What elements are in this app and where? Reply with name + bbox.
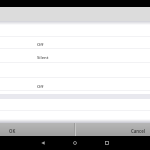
button[interactable]: OK	[0, 123, 74, 136]
staticText: Off	[37, 84, 44, 90]
button[interactable]: Back	[38, 138, 48, 148]
staticText: Silent	[37, 55, 49, 61]
button[interactable]: Cancel	[76, 123, 150, 136]
staticText: Off	[37, 42, 44, 48]
button[interactable]: Off	[0, 78, 150, 90]
staticText: Cancel	[131, 128, 145, 134]
button[interactable]: Silent	[0, 49, 150, 62]
staticText: OK	[9, 128, 16, 134]
button[interactable]: Off	[0, 37, 150, 48]
button[interactable]: Home	[70, 138, 80, 148]
button[interactable]: Recents	[102, 138, 112, 148]
